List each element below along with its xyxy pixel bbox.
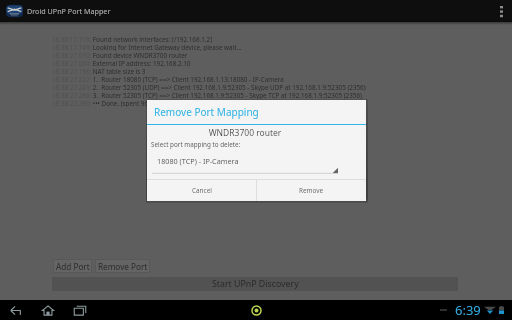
staticText: 18:38:27.064: External IP address: 192.1…	[52, 59, 191, 67]
staticText: 18080 (TCP) - IP-Camera	[157, 156, 239, 166]
staticText: Select port mapping to delete:	[151, 140, 241, 149]
button[interactable]: Start UPnP Discovery	[52, 277, 458, 291]
button[interactable]: Back	[9, 300, 23, 320]
staticText: 18:38:17.718: Found network interfaces: …	[52, 35, 213, 43]
staticText: 18:38:27.280: 3. Router 52305 (TCP) ==> …	[52, 91, 362, 99]
button[interactable]: Cancel	[147, 180, 256, 201]
button[interactable]: 18080 (TCP) - IP-Camera	[152, 153, 338, 174]
staticText: Remove Port	[98, 261, 148, 272]
staticText: 6:39	[455, 301, 481, 319]
staticText: 18:38:27.249: 2. Router 52305 (UDP) ==> …	[52, 83, 366, 91]
button[interactable]: Remove	[257, 180, 366, 201]
staticText: 18:38:27.290: ••• Done. (spent 9650 ms)	[52, 99, 168, 107]
button[interactable]: Home	[41, 300, 55, 320]
button[interactable]: Recent apps	[73, 300, 87, 320]
staticText: Add Port	[56, 261, 90, 272]
staticText: Cancel	[192, 186, 212, 195]
staticText: 18:38:27.030: Found device WNDR3700 rout…	[52, 51, 188, 59]
staticText: 18:38:17.749: Looking for Internet Gatew…	[52, 43, 242, 51]
button[interactable]: Remove Port	[95, 259, 150, 273]
staticText: Droid UPnP Port Mapper	[27, 6, 111, 16]
staticText: Start UPnP Discovery	[212, 278, 299, 290]
staticText: 18:38:27.222: 1. Router 18080 (TCP) ==> …	[52, 75, 284, 83]
staticText: Remove Port Mapping	[154, 105, 259, 119]
button[interactable]: More options	[490, 0, 512, 22]
staticText: 18:38:27.196: NAT table size is 3	[52, 67, 146, 75]
staticText: WNDR3700 router	[147, 127, 343, 139]
staticText: Remove	[299, 186, 324, 195]
button[interactable]: Add Port	[53, 259, 92, 273]
